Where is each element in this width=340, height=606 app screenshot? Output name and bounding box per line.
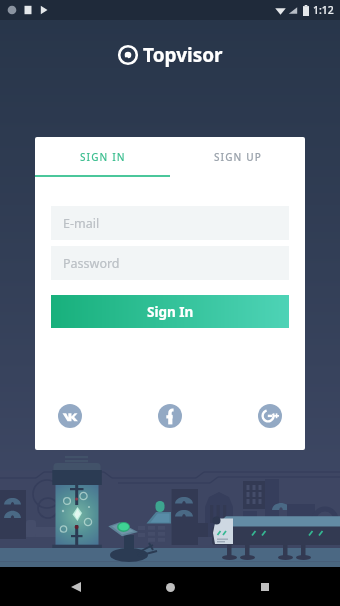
button[interactable]: Recents bbox=[246, 568, 284, 606]
button[interactable]: Password bbox=[51, 246, 289, 280]
staticText: 1:12 bbox=[313, 3, 334, 17]
button[interactable]: E-mail bbox=[51, 206, 289, 240]
button[interactable]: SIGN IN bbox=[35, 137, 170, 177]
staticText: SIGN IN bbox=[80, 150, 126, 164]
staticText: Topvisor bbox=[143, 42, 223, 68]
button[interactable]: Sign In bbox=[51, 295, 289, 328]
staticText: Password bbox=[63, 255, 120, 272]
staticText: E-mail bbox=[63, 215, 100, 232]
button[interactable]: Google Plus bbox=[258, 404, 282, 428]
button[interactable]: VK bbox=[58, 404, 82, 428]
staticText: SIGN UP bbox=[214, 150, 262, 164]
button[interactable]: Home bbox=[151, 568, 189, 606]
button[interactable]: Back bbox=[57, 568, 95, 606]
button[interactable]: SIGN UP bbox=[170, 137, 305, 177]
staticText: Sign In bbox=[147, 303, 194, 321]
button[interactable]: Facebook bbox=[158, 404, 182, 428]
